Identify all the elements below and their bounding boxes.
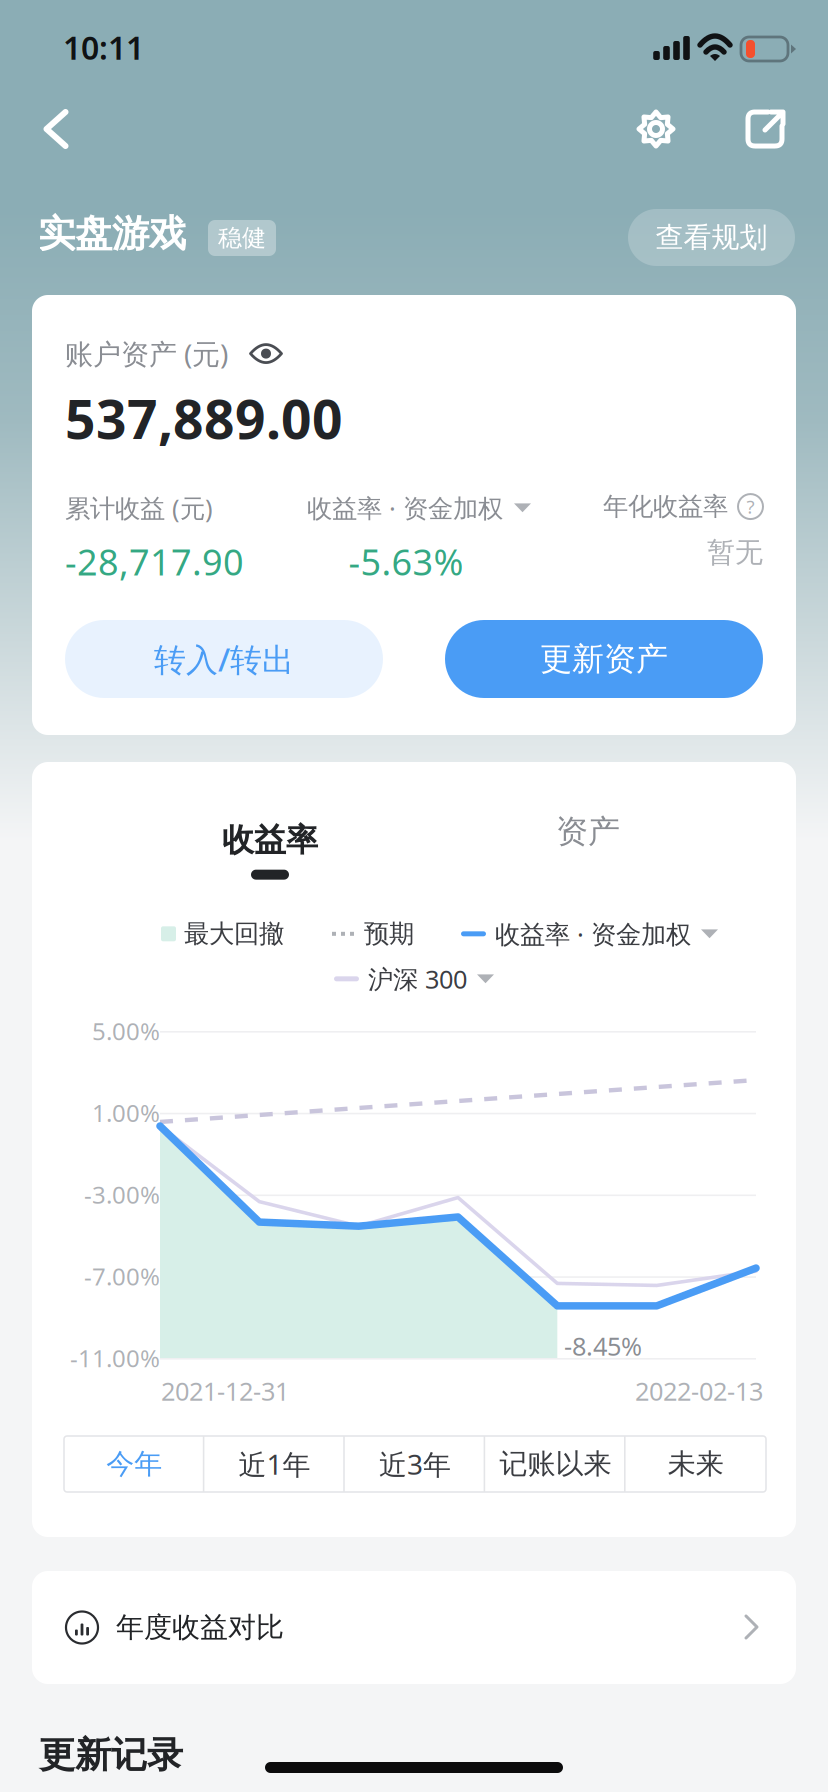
staticText: 收益率 — [222, 820, 318, 860]
staticText: 资产 — [556, 812, 620, 851]
staticText: 10:11 — [63, 26, 144, 68]
staticText: ? — [746, 494, 754, 519]
staticText: 查看规划 — [655, 220, 767, 255]
staticText: -5.63% — [348, 538, 463, 585]
button[interactable]: 资产 — [493, 812, 683, 888]
staticText: 转入/转出 — [154, 638, 294, 680]
button[interactable]: Settings — [627, 100, 685, 158]
staticText: 更新记录 — [39, 1733, 183, 1777]
staticText: 近3年 — [379, 1445, 451, 1483]
button[interactable]: 查看规划 — [628, 209, 795, 266]
staticText: 今年 — [106, 1447, 162, 1481]
button[interactable]: 收益率 — [175, 812, 365, 888]
button[interactable]: 近3年 — [345, 1436, 485, 1492]
button[interactable]: 记账以来 — [485, 1436, 626, 1492]
staticText: 537,889.00 — [65, 383, 343, 454]
staticText: 收益率 · 资金加权 — [495, 917, 691, 951]
staticText: 近1年 — [239, 1445, 311, 1483]
staticText: 暂无 — [707, 535, 763, 569]
staticText: 沪深 300 — [368, 962, 467, 996]
staticText: 记账以来 — [499, 1447, 611, 1481]
staticText: -7.00% — [84, 1260, 160, 1292]
staticText: 预期 — [364, 918, 414, 949]
staticText: -8.45% — [564, 1329, 642, 1363]
staticText: 年化收益率 — [603, 491, 728, 522]
staticText: -11.00% — [70, 1342, 160, 1374]
staticText: 2022-02-13 — [635, 1374, 763, 1408]
staticText: 年度收益对比 — [116, 1610, 284, 1645]
staticText: 累计收益 (元) — [65, 491, 213, 525]
button[interactable]: 年度收益对比 — [32, 1571, 796, 1684]
button[interactable]: Share — [737, 100, 795, 158]
button[interactable]: 未来 — [626, 1436, 766, 1492]
staticText: 2021-12-31 — [161, 1374, 289, 1408]
staticText: 未来 — [668, 1447, 724, 1481]
staticText: -3.00% — [84, 1179, 160, 1210]
button[interactable]: 更新资产 — [445, 620, 763, 698]
button[interactable]: Back — [25, 98, 87, 160]
staticText: 实盘游戏 — [38, 211, 186, 257]
staticText: 稳健 — [218, 223, 266, 253]
button[interactable]: 转入/转出 — [65, 620, 383, 698]
staticText: 账户资产 (元) — [65, 335, 228, 372]
staticText: 5.00% — [92, 1015, 160, 1047]
staticText: 1.00% — [92, 1097, 160, 1129]
button[interactable]: 近1年 — [204, 1436, 345, 1492]
staticText: 收益率 · 资金加权 — [307, 491, 503, 525]
button[interactable]: 今年 — [64, 1436, 204, 1492]
button[interactable]: Hide balance — [249, 342, 283, 366]
staticText: 更新资产 — [540, 639, 668, 679]
staticText: -28,717.90 — [65, 538, 244, 585]
staticText: 最大回撤 — [184, 918, 284, 949]
